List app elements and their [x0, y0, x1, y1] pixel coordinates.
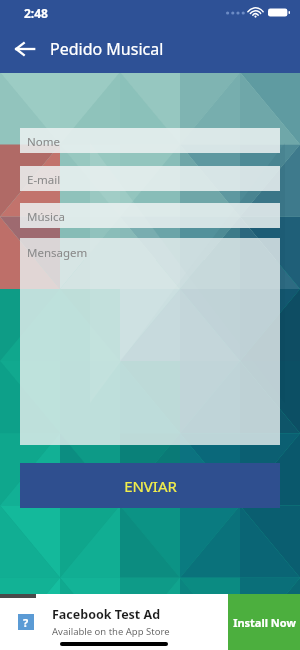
button[interactable]: ENVIAR	[20, 463, 280, 508]
staticText: Install Now	[233, 615, 296, 630]
button[interactable]: Mensagem	[20, 238, 280, 445]
button[interactable]: Música	[20, 203, 280, 228]
staticText: E-mail	[27, 172, 61, 188]
staticText: 2:48	[24, 5, 48, 21]
staticText: ENVIAR	[124, 476, 177, 496]
button[interactable]: Install Now	[228, 594, 300, 650]
button[interactable]: ?	[0, 594, 300, 650]
button[interactable]: Nome	[20, 128, 280, 153]
button[interactable]: E-mail	[20, 166, 280, 191]
staticText: Nome	[27, 134, 60, 150]
staticText: Facebook Test Ad	[52, 606, 161, 623]
button[interactable]: Back	[8, 32, 42, 66]
staticText: Pedido Musical	[50, 38, 164, 60]
staticText: Música	[27, 209, 65, 225]
staticText: Mensagem	[27, 245, 88, 261]
staticText: Available on the App Store	[52, 625, 170, 638]
staticText: ?	[23, 615, 29, 630]
